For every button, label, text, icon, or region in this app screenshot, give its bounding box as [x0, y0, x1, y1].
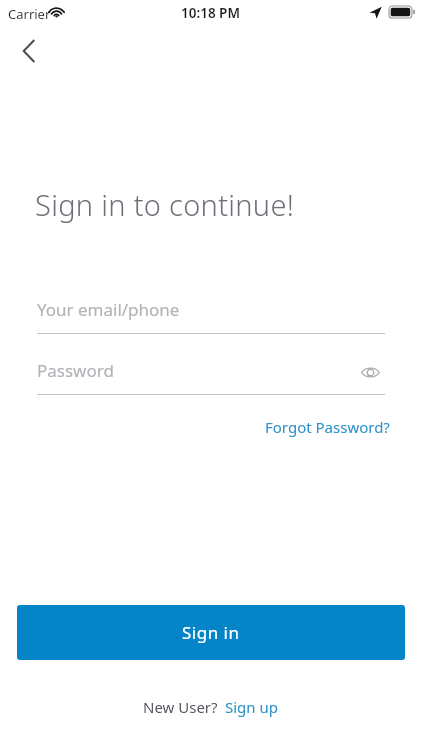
button[interactable]: Sign up	[218, 694, 280, 720]
staticText: Sign in to continue!	[35, 185, 295, 224]
staticText: Sign up	[225, 697, 278, 717]
button[interactable]: Your email/phone	[37, 293, 385, 334]
button[interactable]: Back	[8, 30, 50, 72]
button[interactable]: Show password	[355, 357, 385, 387]
button[interactable]: Sign in	[17, 605, 405, 660]
staticText: Carrier	[8, 5, 51, 23]
staticText: Sign in	[182, 621, 240, 644]
staticText: Forgot Password?	[265, 417, 390, 437]
button[interactable]: Password	[37, 354, 385, 395]
button[interactable]: Forgot Password?	[257, 414, 398, 440]
staticText: New User?	[143, 697, 218, 717]
staticText: Password	[37, 359, 114, 382]
staticText: 10:18 PM	[181, 4, 240, 22]
staticText: Your email/phone	[37, 298, 180, 321]
